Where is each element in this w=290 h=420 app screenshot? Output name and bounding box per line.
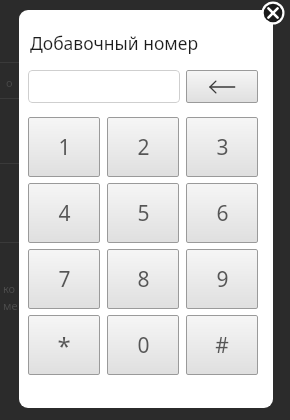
staticText: 1 <box>58 133 71 162</box>
staticText: 0 <box>137 331 150 360</box>
staticText: 6 <box>216 199 229 228</box>
button[interactable] <box>28 70 180 103</box>
button[interactable]: 9 <box>186 249 258 309</box>
staticText: 7 <box>58 265 71 294</box>
staticText: 4 <box>58 199 71 228</box>
staticText: Добавочный номер <box>30 31 199 55</box>
button[interactable]: 6 <box>186 183 258 243</box>
staticText: 3 <box>216 133 229 162</box>
button[interactable]: 8 <box>107 249 179 309</box>
staticText: о <box>6 75 13 90</box>
staticText: # <box>215 331 229 360</box>
staticText: ко <box>3 281 16 296</box>
staticText: 2 <box>137 133 150 162</box>
staticText: 9 <box>216 265 229 294</box>
button[interactable]: 3 <box>186 117 258 177</box>
button[interactable]: # <box>186 315 258 375</box>
button[interactable]: 7 <box>28 249 100 309</box>
button[interactable]: * <box>28 315 100 375</box>
staticText: * <box>57 329 71 362</box>
staticText: ме <box>3 298 18 313</box>
button[interactable]: Backspace <box>186 70 258 103</box>
button[interactable]: 2 <box>107 117 179 177</box>
button[interactable]: Close <box>261 1 285 25</box>
button[interactable]: 1 <box>28 117 100 177</box>
button[interactable]: 4 <box>28 183 100 243</box>
button[interactable]: 0 <box>107 315 179 375</box>
staticText: 8 <box>137 265 150 294</box>
staticText: 5 <box>137 199 150 228</box>
button[interactable]: 5 <box>107 183 179 243</box>
